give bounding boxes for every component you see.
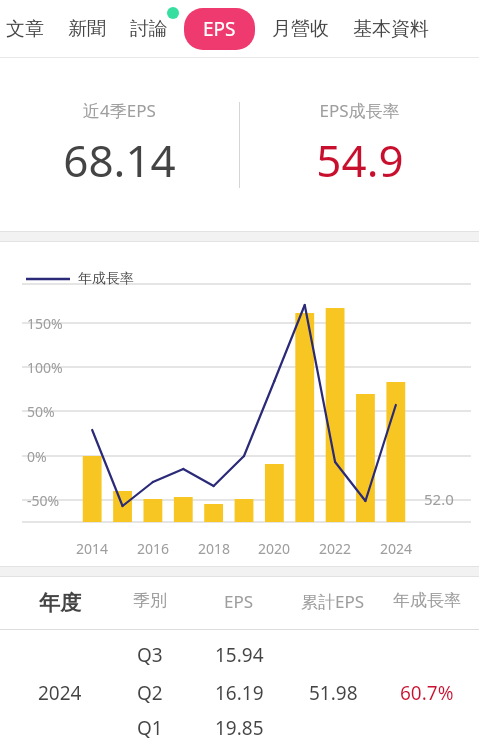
staticText: 月營收 [272, 17, 329, 41]
button[interactable]: Q3 [0, 636, 479, 674]
staticText: 2024 [38, 680, 82, 706]
staticText: 2020 [258, 539, 291, 558]
staticText: 新聞 [68, 17, 106, 41]
button[interactable]: 2024 [0, 674, 479, 712]
staticText: 累計EPS [301, 590, 365, 613]
staticText: 150% [27, 314, 63, 333]
staticText: EPS [224, 590, 254, 613]
staticText: 季別 [133, 590, 167, 611]
staticText: 0% [27, 447, 47, 466]
button[interactable]: EPS成長率 [240, 99, 479, 190]
staticText: 16.19 [215, 680, 264, 706]
staticText: 52.0 [424, 489, 454, 509]
staticText: 50% [27, 402, 55, 421]
staticText: 年成長率 [78, 270, 134, 288]
staticText: 2024 [380, 539, 413, 558]
staticText: 60.7% [400, 680, 454, 706]
staticText: 2022 [319, 539, 352, 558]
staticText: 2018 [198, 539, 231, 558]
staticText: 文章 [6, 17, 44, 41]
staticText: 100% [27, 358, 63, 377]
button[interactable]: 月營收 [270, 9, 331, 49]
staticText: 54.9 [316, 130, 404, 190]
button[interactable]: 近4季EPS [0, 99, 239, 190]
button[interactable]: 基本資料 [351, 9, 431, 49]
staticText: -50% [27, 491, 60, 510]
staticText: 年成長率 [393, 590, 461, 611]
staticText: 2016 [137, 539, 170, 558]
button[interactable]: 年成長率 [0, 242, 479, 566]
button[interactable]: 討論 [128, 9, 170, 49]
staticText: 近4季EPS [83, 99, 156, 122]
staticText: 51.98 [309, 680, 358, 706]
button[interactable]: EPS [184, 8, 255, 50]
staticText: 討論 [130, 17, 168, 41]
staticText: 68.14 [63, 130, 176, 190]
staticText: EPS [203, 16, 236, 42]
staticText: EPS成長率 [319, 99, 400, 122]
staticText: 19.85 [215, 715, 264, 741]
button[interactable]: 文章 [4, 9, 46, 49]
staticText: 15.94 [215, 642, 264, 668]
staticText: Q1 [137, 715, 163, 741]
staticText: Q2 [137, 680, 163, 706]
staticText: 2014 [76, 539, 109, 558]
other: New activity [167, 7, 179, 19]
staticText: 年度 [39, 590, 81, 616]
button[interactable]: Q1 [0, 712, 479, 744]
staticText: Q3 [137, 642, 163, 668]
button[interactable]: 新聞 [66, 9, 108, 49]
staticText: 基本資料 [353, 17, 429, 41]
